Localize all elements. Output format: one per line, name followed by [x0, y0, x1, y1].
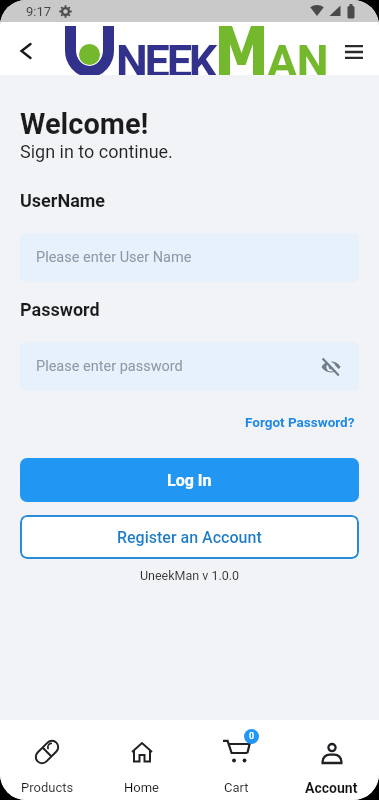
staticText: Products	[21, 780, 74, 795]
staticText: UneekMan v 1.0.0	[20, 568, 359, 583]
button[interactable]: Account	[284, 720, 379, 800]
button[interactable]: Please enter password	[20, 342, 359, 391]
staticText: Password	[20, 299, 100, 320]
button[interactable]: Log In	[20, 458, 359, 502]
button[interactable]: Home	[94, 720, 189, 800]
staticText: UserName	[20, 190, 106, 211]
button[interactable]: 0	[189, 720, 284, 800]
staticText: Account	[305, 780, 358, 796]
button[interactable]	[10, 35, 42, 67]
staticText: 0	[249, 731, 255, 742]
button[interactable]: Forgot Password?	[245, 414, 355, 430]
staticText: Home	[124, 780, 159, 795]
staticText: Forgot Password?	[245, 414, 355, 430]
staticText: Register an Account	[117, 528, 262, 547]
staticText: Sign in to continue.	[20, 141, 173, 162]
staticText: Cart	[224, 780, 249, 795]
button[interactable]	[339, 37, 369, 67]
staticText: Welcome!	[20, 107, 149, 141]
staticText: Please enter User Name	[36, 249, 192, 266]
staticText: AN	[267, 35, 329, 88]
staticText: NEEK	[116, 35, 215, 88]
button[interactable]: Please enter User Name	[20, 233, 359, 282]
staticText: Please enter password	[36, 358, 183, 375]
button[interactable]: Register an Account	[20, 515, 359, 559]
staticText: 9:17	[26, 4, 52, 19]
staticText: Log In	[167, 471, 212, 490]
button[interactable]: Products	[0, 720, 94, 800]
